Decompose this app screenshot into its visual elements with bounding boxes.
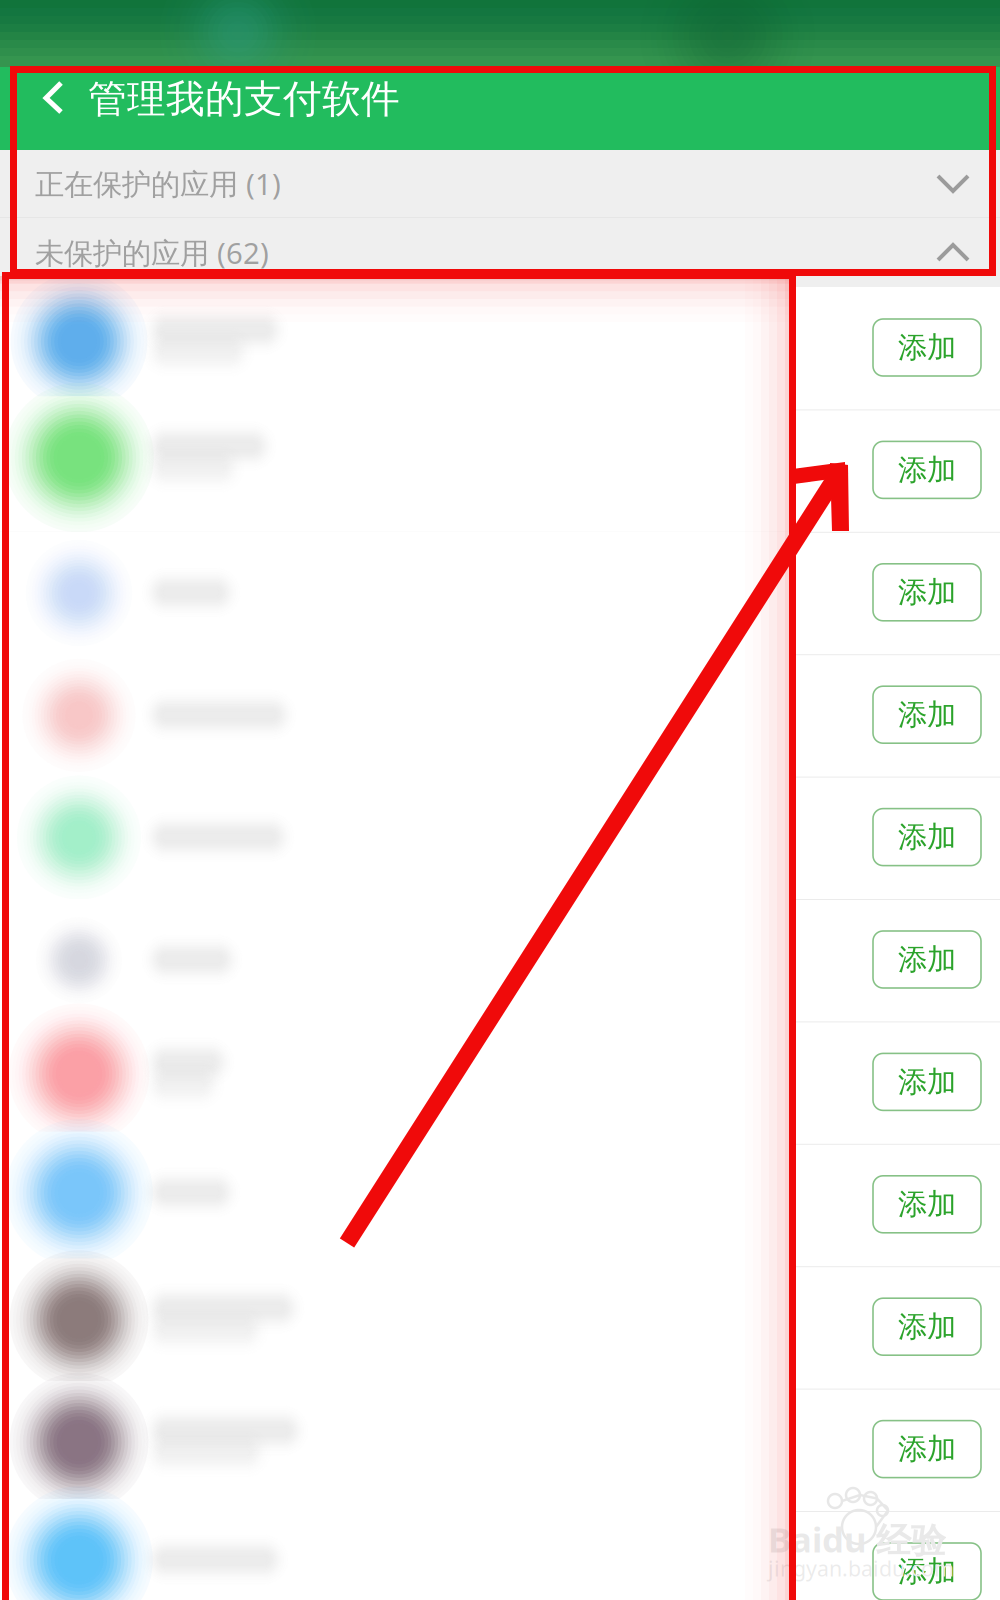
staticText: 添加 xyxy=(898,1186,956,1222)
button[interactable]: 添加 xyxy=(873,686,981,743)
staticText: 添加 xyxy=(898,1064,956,1100)
button[interactable]: 添加 xyxy=(873,319,981,376)
button[interactable]: 添加 xyxy=(873,441,981,498)
button[interactable]: 未保护的应用 (62) xyxy=(0,218,1000,287)
staticText: jingyan.baidu.com xyxy=(768,1554,954,1582)
button[interactable]: 添加 xyxy=(873,564,981,621)
staticText: 添加 xyxy=(898,941,956,977)
button[interactable]: 添加 xyxy=(873,809,981,866)
staticText: Baidu 经验 xyxy=(768,1516,946,1562)
staticText: 添加 xyxy=(898,329,956,365)
staticText: 添加 xyxy=(898,1553,956,1589)
button[interactable]: 添加 xyxy=(873,1053,981,1110)
staticText: 添加 xyxy=(898,697,956,733)
staticText: 正在保护的应用 (1) xyxy=(35,164,281,203)
button[interactable]: 正在保护的应用 (1) xyxy=(0,150,1000,217)
staticText: 未保护的应用 (62) xyxy=(35,233,269,272)
button[interactable]: Back xyxy=(20,67,82,129)
button[interactable]: 添加 xyxy=(873,1176,981,1233)
button[interactable]: 添加 xyxy=(873,1421,981,1478)
button[interactable]: 添加 xyxy=(873,1298,981,1355)
staticText: 添加 xyxy=(898,819,956,855)
staticText: 添加 xyxy=(898,574,956,610)
button[interactable]: 添加 xyxy=(873,931,981,988)
staticText: 添加 xyxy=(898,1431,956,1467)
staticText: 管理我的支付软件 xyxy=(88,75,400,123)
staticText: 添加 xyxy=(898,1309,956,1345)
staticText: 添加 xyxy=(898,452,956,488)
button[interactable]: 添加 xyxy=(873,1543,981,1600)
